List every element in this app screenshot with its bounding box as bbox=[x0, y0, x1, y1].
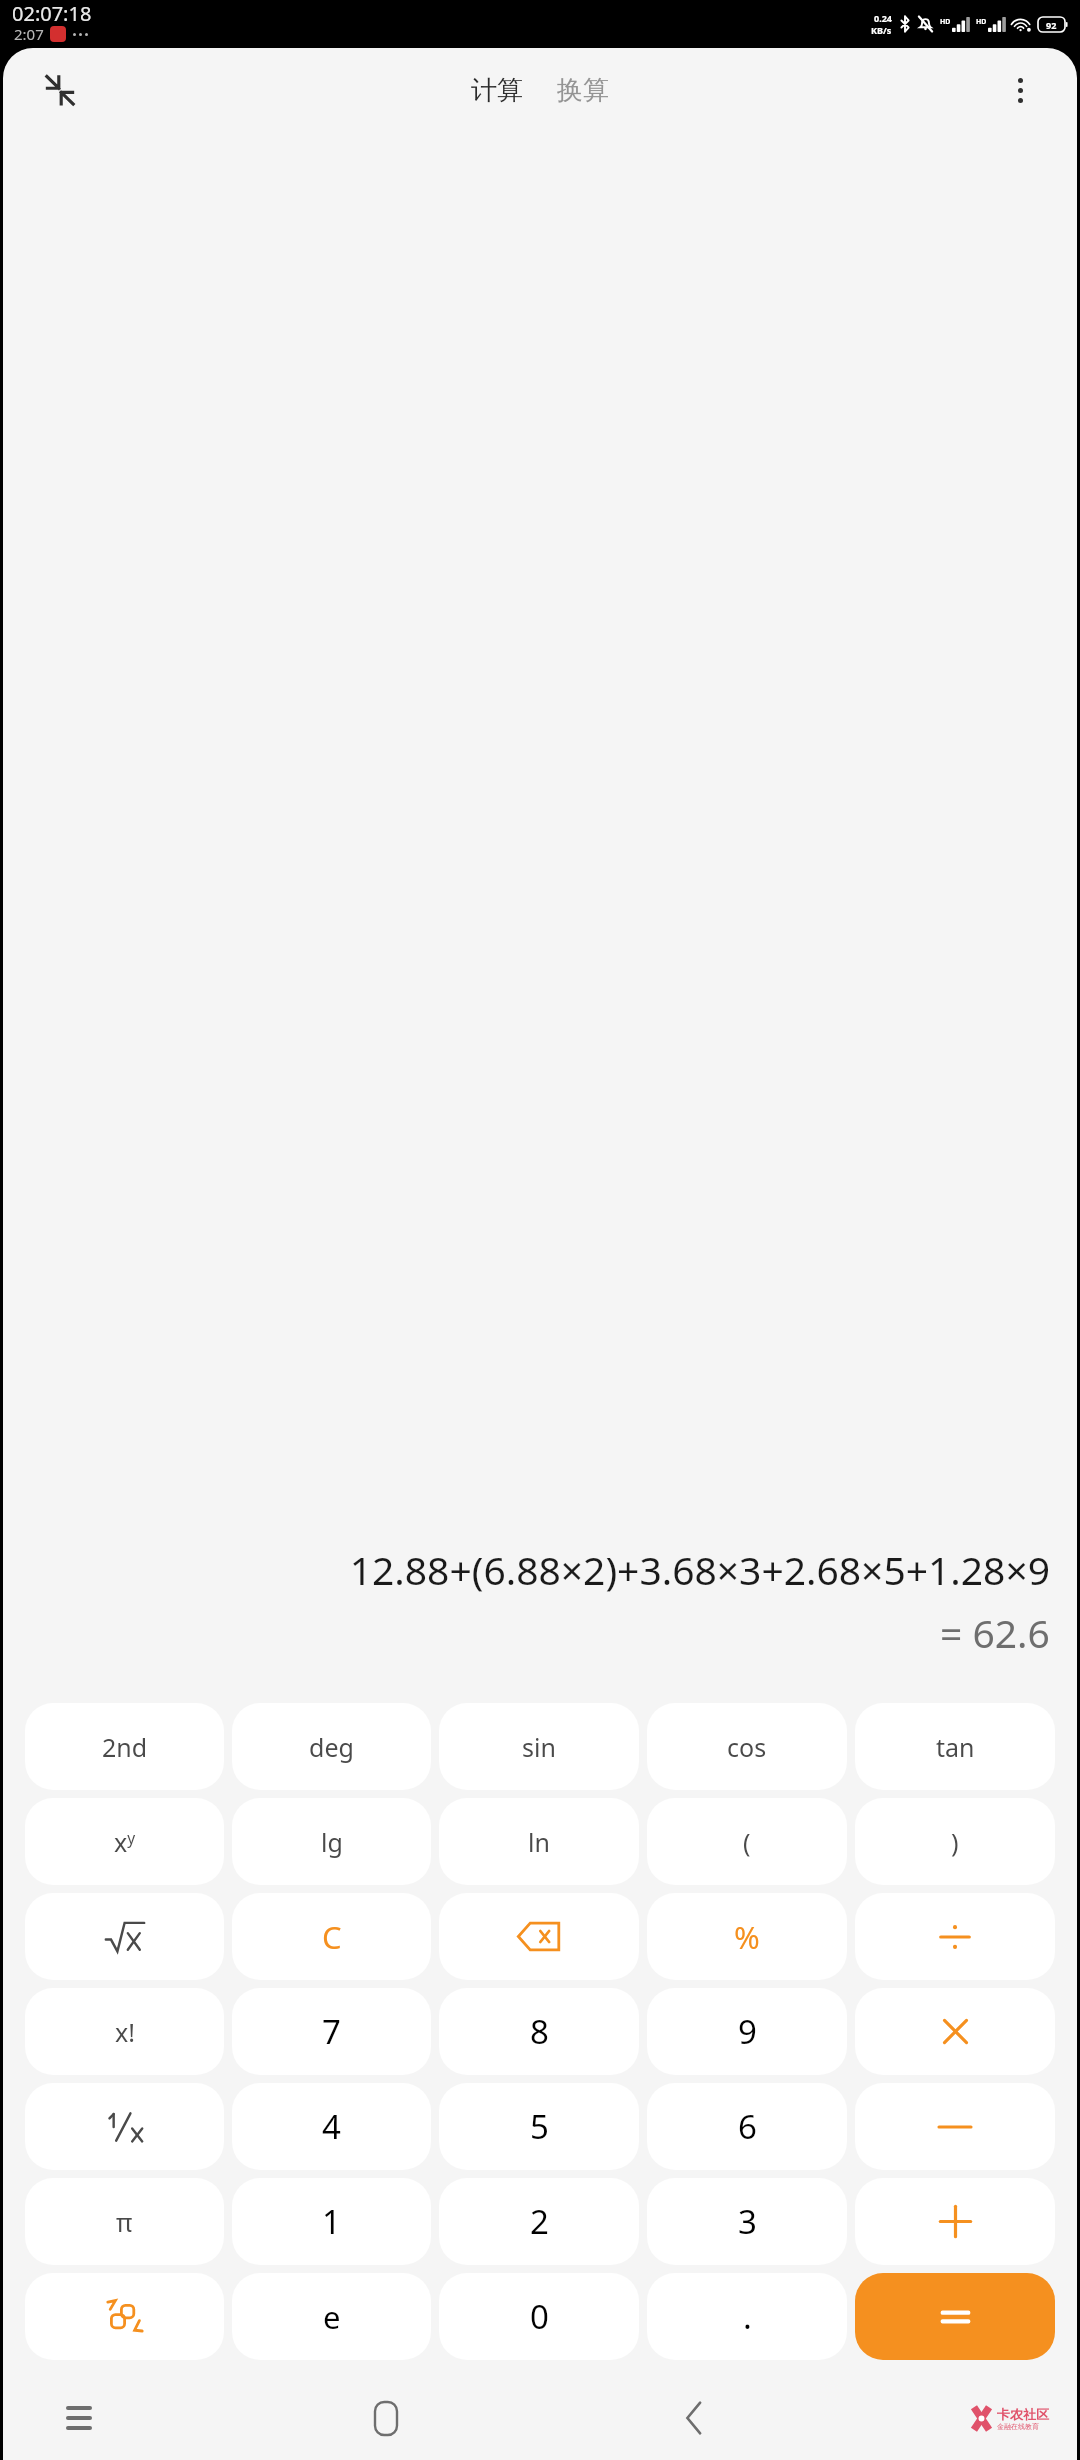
button[interactable]: 9 bbox=[647, 1988, 847, 2075]
button[interactable]: deg bbox=[232, 1703, 431, 1790]
button[interactable]: Square root bbox=[25, 1893, 224, 1980]
staticText: C bbox=[322, 1916, 342, 1958]
staticText: 0 bbox=[530, 2294, 549, 2339]
button[interactable]: ) bbox=[855, 1798, 1055, 1885]
button[interactable]: 换算 bbox=[547, 64, 619, 117]
button[interactable]: ( bbox=[647, 1798, 847, 1885]
button[interactable]: 2nd bbox=[25, 1703, 224, 1790]
staticText: x! bbox=[115, 2015, 135, 2049]
staticText: ) bbox=[951, 1825, 959, 1859]
staticText: 6 bbox=[738, 2104, 757, 2149]
button[interactable]: 6 bbox=[647, 2083, 847, 2170]
staticText: deg bbox=[309, 1730, 354, 1764]
button[interactable]: C bbox=[232, 1893, 431, 1980]
staticText: 8 bbox=[530, 2009, 549, 2054]
staticText: 4 bbox=[322, 2104, 341, 2149]
button[interactable]: Collapse bbox=[31, 61, 89, 119]
button[interactable]: sin bbox=[439, 1703, 639, 1790]
staticText: 7 bbox=[322, 2009, 341, 2054]
button[interactable]: 0 bbox=[439, 2273, 639, 2360]
staticText: KB/s bbox=[871, 24, 892, 36]
button[interactable]: Recents bbox=[47, 2386, 111, 2450]
staticText: 5 bbox=[530, 2104, 549, 2149]
button[interactable]: Home bbox=[354, 2386, 418, 2450]
button[interactable]: More options bbox=[991, 61, 1049, 119]
staticText: ln bbox=[528, 1825, 550, 1859]
button[interactable]: 计算 bbox=[461, 64, 533, 117]
staticText: cos bbox=[727, 1730, 767, 1764]
button[interactable]: ln bbox=[439, 1798, 639, 1885]
button[interactable]: Divide bbox=[855, 1893, 1055, 1980]
staticText: HD bbox=[976, 17, 987, 27]
staticText: % bbox=[734, 1916, 760, 1958]
staticText: 2nd bbox=[102, 1730, 148, 1764]
button[interactable]: Backspace bbox=[439, 1893, 639, 1980]
staticText: π bbox=[116, 2205, 133, 2239]
button[interactable]: . bbox=[647, 2273, 847, 2360]
button[interactable]: 7 bbox=[232, 1988, 431, 2075]
staticText: sin bbox=[522, 1730, 556, 1764]
staticText: 2:07 bbox=[14, 24, 44, 44]
staticText: 3 bbox=[738, 2199, 757, 2244]
staticText: 92 bbox=[1046, 19, 1057, 31]
staticText: . bbox=[743, 2294, 752, 2339]
button[interactable]: % bbox=[647, 1893, 847, 1980]
staticText: 12.88+(6.88×2)+3.68×3+2.68×5+1.28×9 bbox=[30, 1543, 1050, 1596]
staticText: 卡农社区 bbox=[997, 2406, 1049, 2422]
button[interactable]: tan bbox=[855, 1703, 1055, 1790]
staticText: 金融在线教育 bbox=[997, 2422, 1039, 2431]
staticText: = 62.6 bbox=[940, 1606, 1050, 1659]
button[interactable]: 5 bbox=[439, 2083, 639, 2170]
staticText: 计算 bbox=[471, 74, 523, 107]
button[interactable]: 2 bbox=[439, 2178, 639, 2265]
staticText: tan bbox=[936, 1730, 975, 1764]
button[interactable]: Back bbox=[661, 2386, 725, 2450]
button[interactable]: Multiply bbox=[855, 1988, 1055, 2075]
button[interactable]: 1 bbox=[232, 2178, 431, 2265]
button[interactable]: 4 bbox=[232, 2083, 431, 2170]
button[interactable]: x! bbox=[25, 1988, 224, 2075]
button[interactable]: Equals bbox=[855, 2273, 1055, 2360]
button[interactable]: e bbox=[232, 2273, 431, 2360]
staticText: ( bbox=[743, 1825, 751, 1859]
button[interactable]: 3 bbox=[647, 2178, 847, 2265]
staticText: 换算 bbox=[557, 74, 609, 107]
button[interactable]: Minus bbox=[855, 2083, 1055, 2170]
button[interactable]: xy bbox=[25, 1798, 224, 1885]
button[interactable]: π bbox=[25, 2178, 224, 2265]
button[interactable]: Random bbox=[25, 2273, 224, 2360]
staticText: xy bbox=[114, 1825, 136, 1859]
staticText: 1 bbox=[322, 2199, 341, 2244]
staticText: 0.24 bbox=[874, 12, 892, 24]
staticText: 9 bbox=[738, 2009, 757, 2054]
button[interactable]: One over x bbox=[25, 2083, 224, 2170]
button[interactable]: cos bbox=[647, 1703, 847, 1790]
staticText: HD bbox=[940, 17, 951, 27]
button[interactable]: 8 bbox=[439, 1988, 639, 2075]
button[interactable]: lg bbox=[232, 1798, 431, 1885]
staticText: 02:07:18 bbox=[12, 0, 92, 27]
button[interactable]: Plus bbox=[855, 2178, 1055, 2265]
staticText: lg bbox=[321, 1825, 343, 1859]
staticText: 2 bbox=[530, 2199, 549, 2244]
staticText: e bbox=[323, 2296, 341, 2338]
